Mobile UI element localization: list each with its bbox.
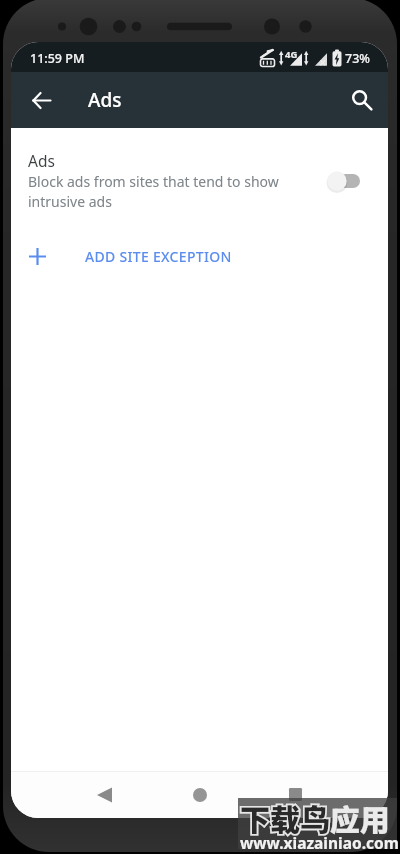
staticText: 下载鸟	[240, 796, 330, 839]
staticText: 11:59 PM	[30, 50, 85, 67]
staticText: www.xiazainiao.com	[240, 832, 399, 853]
button[interactable]: Back	[80, 771, 128, 818]
staticText: 73%	[345, 50, 370, 67]
staticText: ADD SITE EXCEPTION	[85, 247, 232, 266]
button[interactable]: ADD SITE EXCEPTION	[11, 234, 388, 278]
button[interactable]: Home	[176, 771, 224, 818]
staticText: Ads	[88, 87, 122, 113]
staticText: Block ads from sites that tend to show i…	[28, 172, 286, 211]
staticText: 应用	[330, 796, 390, 839]
staticText: 4G	[285, 48, 298, 61]
button[interactable]: Recents	[271, 771, 319, 818]
button[interactable]: Ads	[11, 146, 388, 215]
staticText: 下载鸟	[240, 796, 330, 839]
staticText: Ads	[28, 150, 55, 171]
button[interactable]: Back	[17, 76, 65, 124]
button[interactable]: Search	[338, 76, 386, 124]
